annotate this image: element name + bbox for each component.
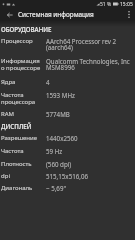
staticText: Разрешение <box>1 134 41 142</box>
staticText: Частота <box>1 147 41 155</box>
button[interactable]: Ядра <box>0 76 135 89</box>
button[interactable]: More options <box>122 8 135 21</box>
button[interactable]: Разрешение <box>0 132 135 145</box>
staticText: 1593 MHz <box>46 91 134 99</box>
button[interactable]: Диагональ <box>0 182 135 194</box>
button[interactable]: Плотность <box>0 158 135 170</box>
button[interactable]: Back <box>0 8 16 21</box>
button[interactable]: Процессор <box>0 35 135 55</box>
staticText: Информация о процессоре <box>1 57 41 72</box>
staticText: Плотность <box>1 160 41 168</box>
staticText: 1440x2560 <box>46 134 134 142</box>
staticText: (560 dpi) <box>46 160 134 168</box>
staticText: dpi <box>1 172 41 180</box>
staticText: ДИСПЛЕЙ <box>1 122 32 130</box>
staticText: ~ 5,69" <box>46 184 134 192</box>
button[interactable]: Информация о процессоре <box>0 55 135 76</box>
staticText: 51 % <box>100 1 112 8</box>
staticText: 515,15x516,06 <box>46 172 134 180</box>
staticText: 59 Hz <box>46 147 134 155</box>
staticText: ОБОРУДОВАНИЕ <box>1 25 52 33</box>
staticText: 4 <box>46 78 134 86</box>
staticText: Системная информация <box>18 10 94 19</box>
staticText: Частота процессора <box>1 91 41 106</box>
button[interactable]: Частота процессора <box>0 89 135 108</box>
staticText: Qualcomm Technologies, Inc MSM8996 <box>46 57 134 72</box>
staticText: 15:05 <box>120 1 133 8</box>
staticText: RAM <box>1 110 41 118</box>
staticText: Ядра <box>1 78 41 86</box>
staticText: 5774MB <box>46 110 134 118</box>
staticText: Диагональ <box>1 184 41 192</box>
staticText: AArch64 Processor rev 2 (aarch64) <box>46 37 134 52</box>
button[interactable]: dpi <box>0 170 135 182</box>
button[interactable]: Частота <box>0 145 135 158</box>
button[interactable]: RAM <box>0 108 135 120</box>
staticText: Процессор <box>1 37 41 45</box>
